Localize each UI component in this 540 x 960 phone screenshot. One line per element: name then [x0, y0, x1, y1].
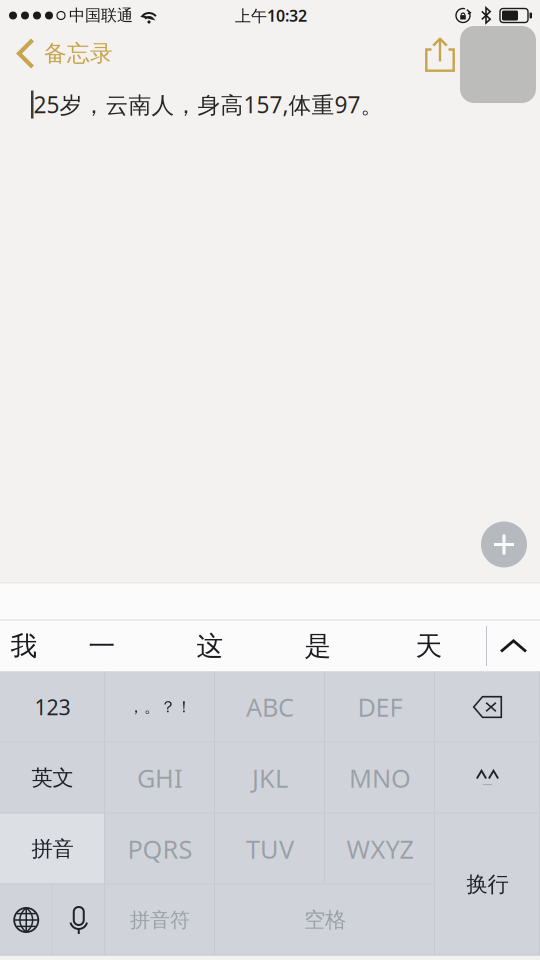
button[interactable]: JKL: [215, 742, 325, 813]
button[interactable]: 换行: [435, 813, 540, 955]
button[interactable]: PQRS: [105, 813, 215, 884]
staticText: 天: [415, 630, 442, 662]
button[interactable]: TUV: [215, 813, 325, 884]
button[interactable]: 添加: [481, 521, 527, 567]
button[interactable]: 附件: [460, 26, 536, 103]
staticText: 换行: [466, 871, 508, 898]
button[interactable]: 这: [156, 620, 264, 671]
button[interactable]: 英文: [0, 742, 105, 813]
button[interactable]: 123: [0, 671, 105, 742]
staticText: DEF: [357, 690, 402, 724]
staticText: 是: [304, 630, 331, 662]
staticText: 英文: [31, 765, 73, 791]
staticText: 备忘录: [44, 40, 113, 67]
button[interactable]: MNO: [325, 742, 435, 813]
button[interactable]: 符号: [435, 742, 540, 813]
button[interactable]: 空格: [215, 884, 435, 955]
staticText: PQRS: [127, 832, 192, 866]
staticText: 拼音符: [130, 908, 190, 932]
button[interactable]: 展开候选: [487, 620, 540, 671]
staticText: 123: [34, 693, 70, 721]
button[interactable]: ，。？！: [105, 671, 215, 742]
button[interactable]: 拼音符: [105, 884, 215, 955]
staticText: 中国联通: [69, 6, 133, 25]
button[interactable]: WXYZ: [325, 813, 435, 884]
staticText: ，。？！: [128, 697, 192, 717]
staticText: 拼音: [31, 836, 73, 862]
button[interactable]: 天: [372, 620, 486, 671]
staticText: 我: [10, 630, 37, 662]
button[interactable]: 拼音: [0, 813, 105, 884]
staticText: 25岁，云南人，身高157,体重97。: [33, 89, 383, 120]
button[interactable]: DEF: [325, 671, 435, 742]
button[interactable]: 备忘录: [0, 26, 123, 80]
button[interactable]: 切换键盘: [0, 884, 52, 955]
button[interactable]: ABC: [215, 671, 325, 742]
staticText: WXYZ: [346, 832, 413, 866]
staticText: TUV: [246, 832, 294, 866]
staticText: 空格: [304, 907, 346, 933]
button[interactable]: 是: [264, 620, 372, 671]
staticText: ABC: [246, 690, 294, 724]
button[interactable]: 删除: [435, 671, 540, 742]
button[interactable]: 我: [0, 620, 48, 671]
staticText: 这: [196, 630, 223, 662]
staticText: MNO: [349, 761, 411, 795]
button[interactable]: 语音输入: [52, 884, 105, 955]
staticText: GHI: [137, 761, 183, 795]
button[interactable]: GHI: [105, 742, 215, 813]
staticText: 上午10:32: [235, 5, 307, 26]
staticText: JKL: [252, 761, 288, 795]
button[interactable]: 一: [48, 620, 156, 671]
button[interactable]: 分享: [415, 26, 465, 80]
staticText: 一: [88, 630, 115, 662]
